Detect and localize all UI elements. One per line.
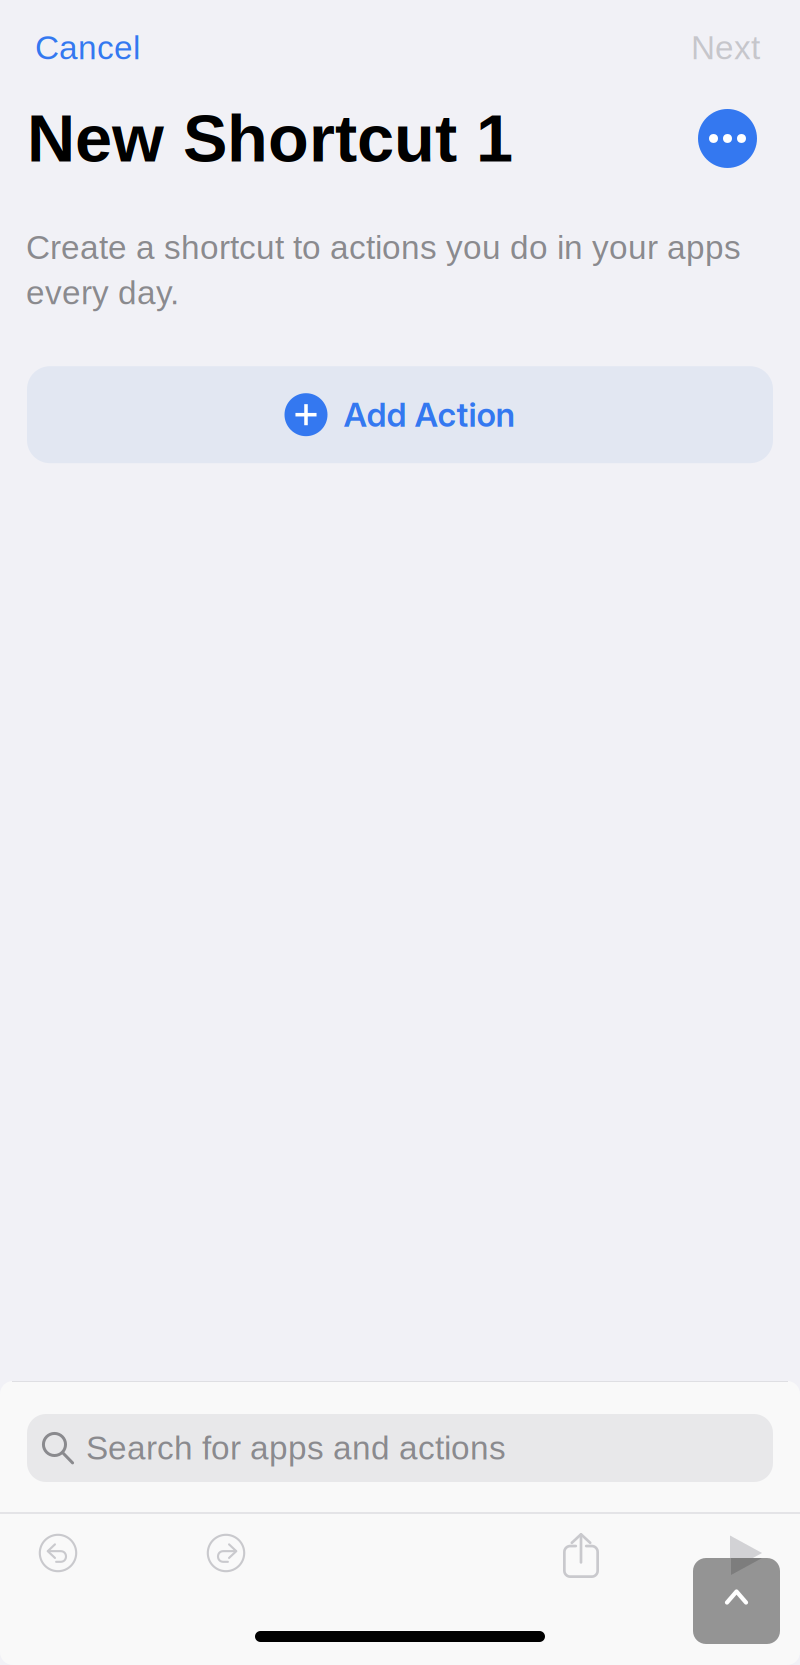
button[interactable]: Add Action — [27, 366, 773, 463]
button[interactable]: Run shortcut — [692, 1518, 800, 1588]
button[interactable]: Cancel — [31, 21, 144, 74]
button[interactable]: Hide keyboard — [693, 1558, 780, 1644]
button[interactable]: Search for apps and actions — [27, 1414, 773, 1482]
button[interactable]: More options — [698, 109, 757, 168]
button[interactable]: Undo — [0, 1518, 116, 1588]
staticText: Next — [691, 29, 760, 66]
button[interactable]: Redo — [116, 1518, 336, 1588]
button[interactable]: Share — [478, 1518, 692, 1588]
staticText: Create a shortcut to actions you do in y… — [26, 229, 741, 311]
staticText: Search for apps and actions — [86, 1429, 506, 1467]
button[interactable]: Next — [687, 21, 764, 74]
staticText: New Shortcut 1 — [27, 101, 513, 176]
staticText: Cancel — [35, 29, 140, 66]
staticText: Add Action — [343, 394, 515, 435]
